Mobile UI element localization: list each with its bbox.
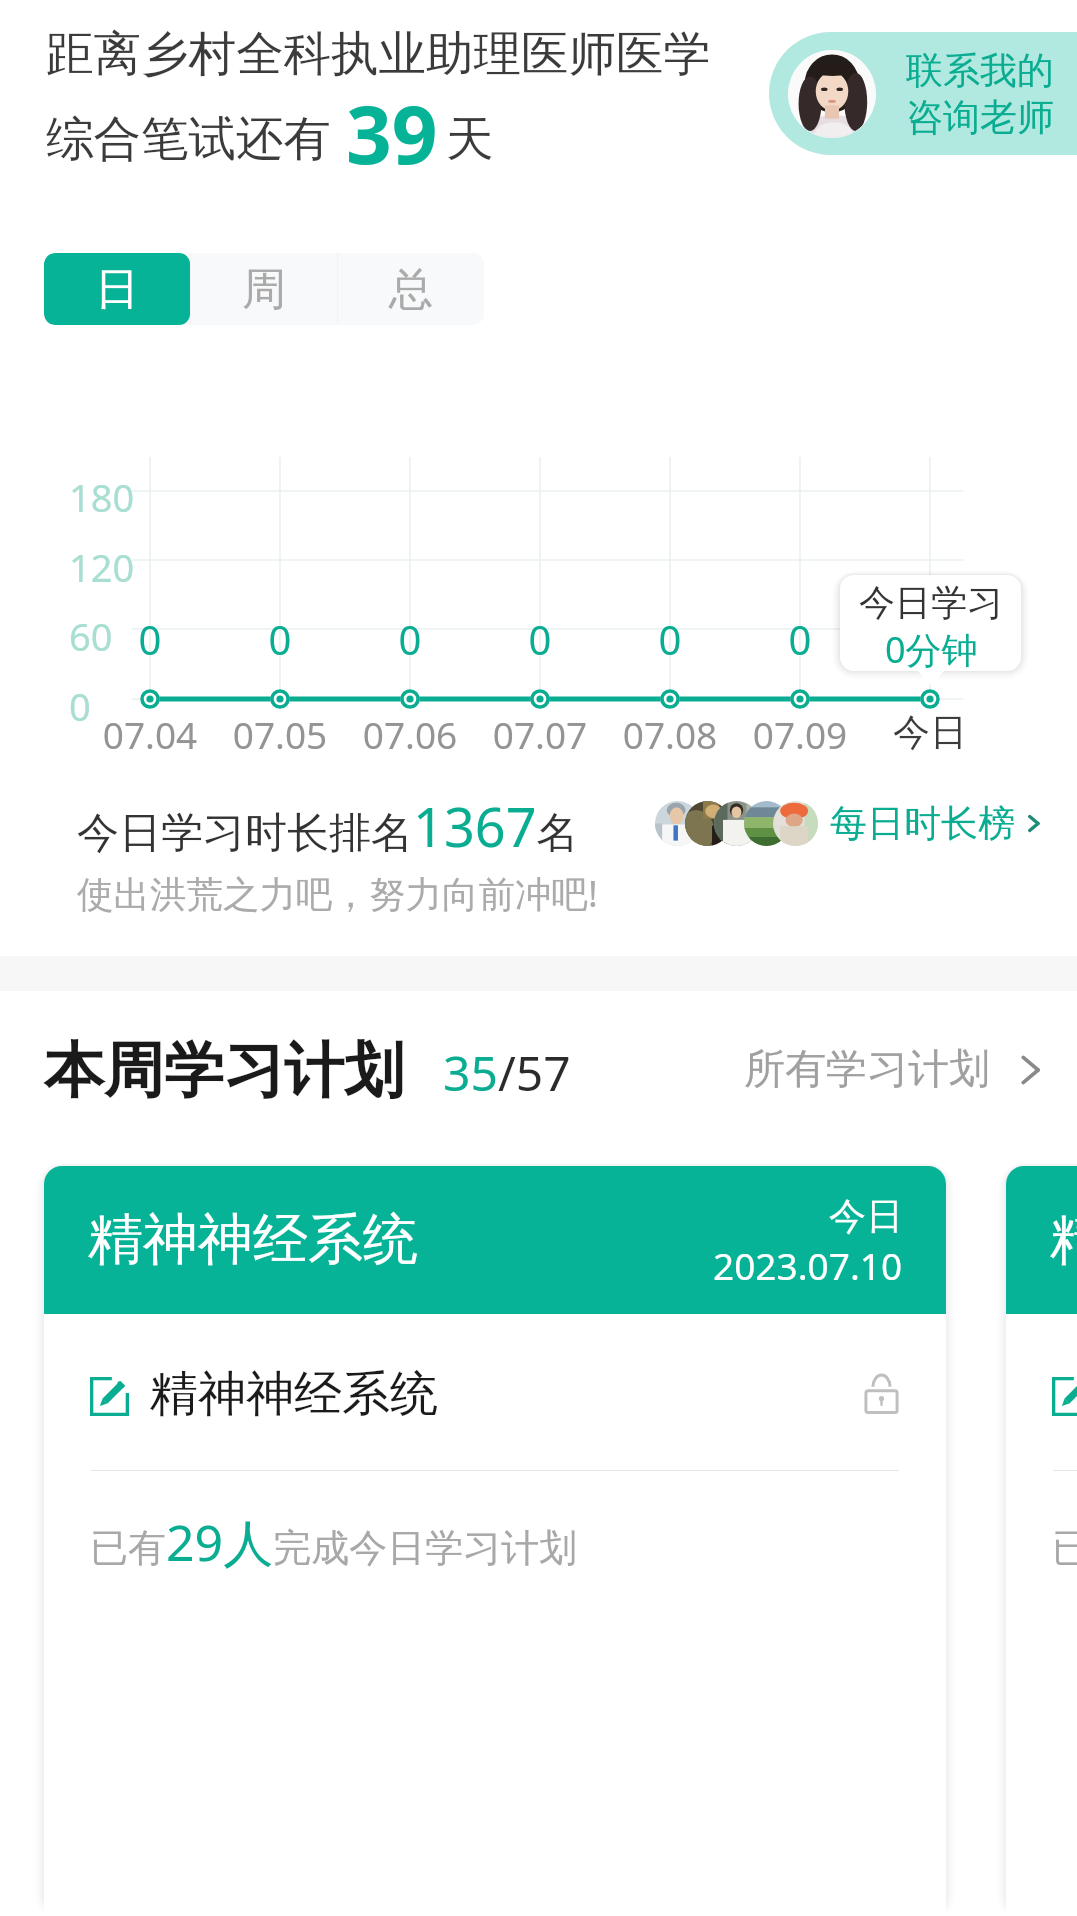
staticText: 已有29人完成今日学习计划	[1052, 1508, 1077, 1576]
button[interactable]: 每日时长榜	[655, 795, 1043, 851]
staticText: 使出洪荒之力吧，努力向前冲吧!	[77, 868, 598, 918]
button[interactable]: 精神神经系统	[44, 1166, 946, 1916]
button[interactable]: 所有学习计划	[744, 1042, 1047, 1098]
staticText: 日	[95, 262, 139, 317]
staticText: 咨询老师	[906, 94, 1054, 141]
staticText: 精神神经系统	[150, 1364, 438, 1424]
staticText: 综合笔试还有	[46, 109, 331, 169]
staticText: 35/57	[443, 1040, 571, 1105]
staticText: 60	[69, 610, 113, 662]
staticText: 周	[242, 262, 286, 317]
staticText: 今日	[840, 709, 1020, 756]
staticText: 0	[760, 612, 840, 666]
staticText: 180	[69, 471, 135, 523]
staticText: 07.06	[320, 709, 500, 759]
staticText: 07.09	[710, 709, 890, 759]
staticText: 每日时长榜	[830, 800, 1015, 847]
staticText: 已有29人完成今日学习计划	[90, 1508, 578, 1576]
staticText: 所有学习计划	[744, 1044, 990, 1096]
staticText: 联系我的	[906, 47, 1054, 94]
staticText: 0	[110, 612, 190, 666]
staticText: 07.05	[190, 709, 370, 759]
staticText: 今日	[829, 1193, 903, 1240]
staticText: 距离乡村全科执业助理医师医学	[46, 24, 711, 84]
staticText: 0	[69, 680, 91, 732]
staticText: 120	[69, 541, 135, 593]
button[interactable]: 精神神经系统	[1006, 1166, 1077, 1916]
staticText: 0	[370, 612, 450, 666]
staticText: 0分钟	[885, 625, 978, 674]
staticText: 精神神经系统	[1050, 1205, 1077, 1274]
other: Locked	[864, 1373, 899, 1415]
staticText: 今日学习	[859, 580, 1003, 625]
staticText: 39	[346, 78, 438, 187]
staticText: 0	[500, 612, 580, 666]
button[interactable]: 周	[191, 253, 337, 325]
staticText: 精神神经系统	[88, 1205, 418, 1274]
staticText: 2023.07.10	[713, 1240, 903, 1290]
staticText: 总	[389, 262, 433, 317]
button[interactable]: 日	[44, 253, 190, 325]
staticText: 今日学习时长排名1367名	[77, 789, 579, 863]
button[interactable]: 联系我的	[769, 32, 1077, 155]
staticText: 07.07	[450, 709, 630, 759]
button[interactable]: 总	[338, 253, 484, 325]
staticText: 07.08	[580, 709, 760, 759]
staticText: 本周学习计划	[44, 1033, 404, 1109]
staticText: 0	[240, 612, 320, 666]
staticText: 天	[446, 109, 494, 169]
staticText: 0	[630, 612, 710, 666]
staticText: 07.04	[60, 709, 240, 759]
